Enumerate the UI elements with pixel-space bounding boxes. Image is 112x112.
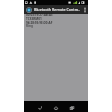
- staticText: Bluetooth Remote Contro..: [34, 7, 82, 12]
- button[interactable]: Home: [48, 101, 64, 112]
- staticText: TCS3RM01: [26, 17, 42, 21]
- button[interactable]: 00:03:19:27:AB:A3: [26, 13, 53, 17]
- button[interactable]: 94:28:93:9E:D0:AF: [26, 21, 53, 25]
- button[interactable]: TCS3RM01: [26, 17, 42, 21]
- button[interactable]: Back: [32, 101, 48, 112]
- button[interactable]: Ring: [26, 24, 33, 28]
- staticText: Ring: [26, 24, 33, 28]
- staticText: 00:03:19:27:AB:A3: [26, 13, 53, 17]
- button[interactable]: Recents: [64, 101, 80, 112]
- button[interactable]: More options: [82, 5, 87, 14]
- button[interactable]: Bluetooth Remote Contro..: [24, 5, 88, 14]
- staticText: 94:28:93:9E:D0:AF: [26, 21, 53, 25]
